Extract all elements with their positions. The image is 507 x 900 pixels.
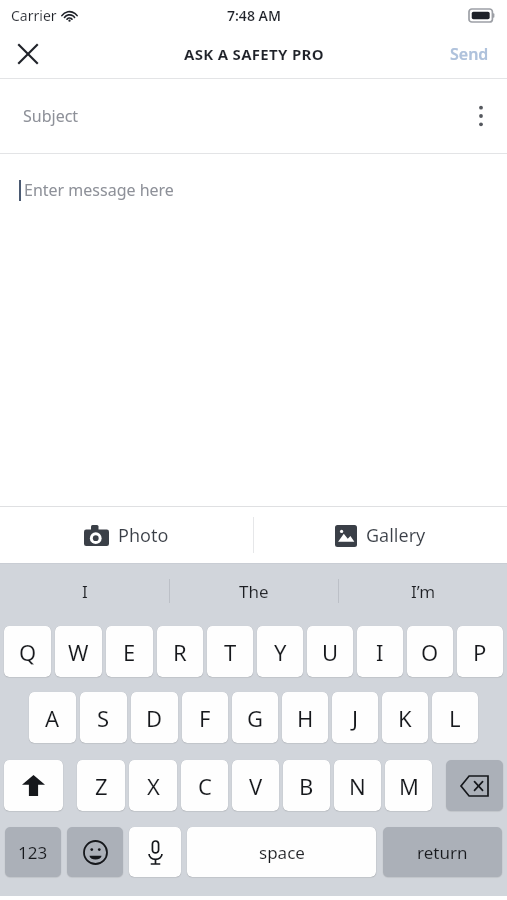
button[interactable]: D [131,692,178,743]
staticText: H [297,703,314,733]
button[interactable]: Y [257,626,303,677]
staticText: The [239,580,269,603]
staticText: Enter message here [24,179,174,201]
staticText: C [198,771,212,801]
button[interactable]: Shift [4,760,63,811]
button[interactable]: K [382,692,428,743]
staticText: Photo [118,523,169,548]
staticText: T [224,637,237,667]
button[interactable]: P [457,626,503,677]
button[interactable]: return [383,827,502,877]
staticText: X [147,771,160,801]
staticText: E [123,637,136,667]
staticText: Send [450,43,489,65]
button[interactable]: J [332,692,378,743]
staticText: F [199,703,211,733]
button[interactable]: Gallery [254,506,507,564]
button[interactable]: R [157,626,203,677]
staticText: I [376,637,384,667]
button[interactable]: H [282,692,328,743]
button[interactable]: Close [0,30,56,78]
staticText: B [299,771,314,801]
button[interactable]: More options [455,79,507,153]
staticText: Q [19,637,37,667]
button[interactable]: N [334,760,381,811]
staticText: M [399,771,419,801]
button[interactable]: E [106,626,153,677]
button[interactable]: O [407,626,453,677]
staticText: G [247,703,264,733]
button[interactable]: I [0,564,169,618]
staticText: Carrier [11,6,57,25]
button[interactable]: G [232,692,278,743]
staticText: L [449,703,461,733]
button[interactable]: U [307,626,353,677]
button[interactable]: C [181,760,228,811]
button[interactable]: A [29,692,76,743]
staticText: return [417,841,468,864]
button[interactable]: The [170,564,338,618]
button[interactable]: Subject [0,79,507,153]
staticText: D [146,703,163,733]
button[interactable]: Q [4,626,51,677]
staticText: J [352,703,359,733]
button[interactable]: Send [432,30,507,78]
staticText: O [421,637,439,667]
staticText: S [97,703,110,733]
staticText: W [68,637,89,667]
staticText: Subject [23,105,79,127]
staticText: Y [274,637,287,667]
staticText: V [249,771,263,801]
button[interactable]: B [283,760,330,811]
button[interactable]: T [207,626,253,677]
staticText: Gallery [366,523,426,548]
button[interactable]: S [80,692,127,743]
button[interactable]: Backspace [446,760,503,811]
staticText: ASK A SAFETY PRO [184,44,324,64]
button[interactable]: I [357,626,403,677]
button[interactable]: Z [77,760,125,811]
button[interactable]: W [55,626,102,677]
staticText: space [259,841,305,864]
button[interactable]: F [182,692,228,743]
staticText: I’m [411,580,436,603]
button[interactable]: I’m [339,564,507,618]
staticText: N [349,771,366,801]
button[interactable]: M [385,760,432,811]
button[interactable]: Photo [0,506,253,564]
staticText: Z [95,771,108,801]
button[interactable]: V [232,760,279,811]
staticText: I [82,580,88,603]
button[interactable]: X [129,760,177,811]
button[interactable]: 123 [5,827,61,877]
staticText: 7:48 AM [227,6,281,25]
staticText: 123 [18,841,48,864]
staticText: R [173,637,187,667]
button[interactable]: Emoji [67,827,123,877]
button[interactable]: Dictation [129,827,181,877]
staticText: U [322,637,339,667]
staticText: P [473,637,487,667]
button[interactable]: Enter message here [0,154,507,506]
staticText: K [398,703,412,733]
button[interactable]: space [187,827,376,877]
button[interactable]: L [432,692,478,743]
staticText: A [45,703,60,733]
